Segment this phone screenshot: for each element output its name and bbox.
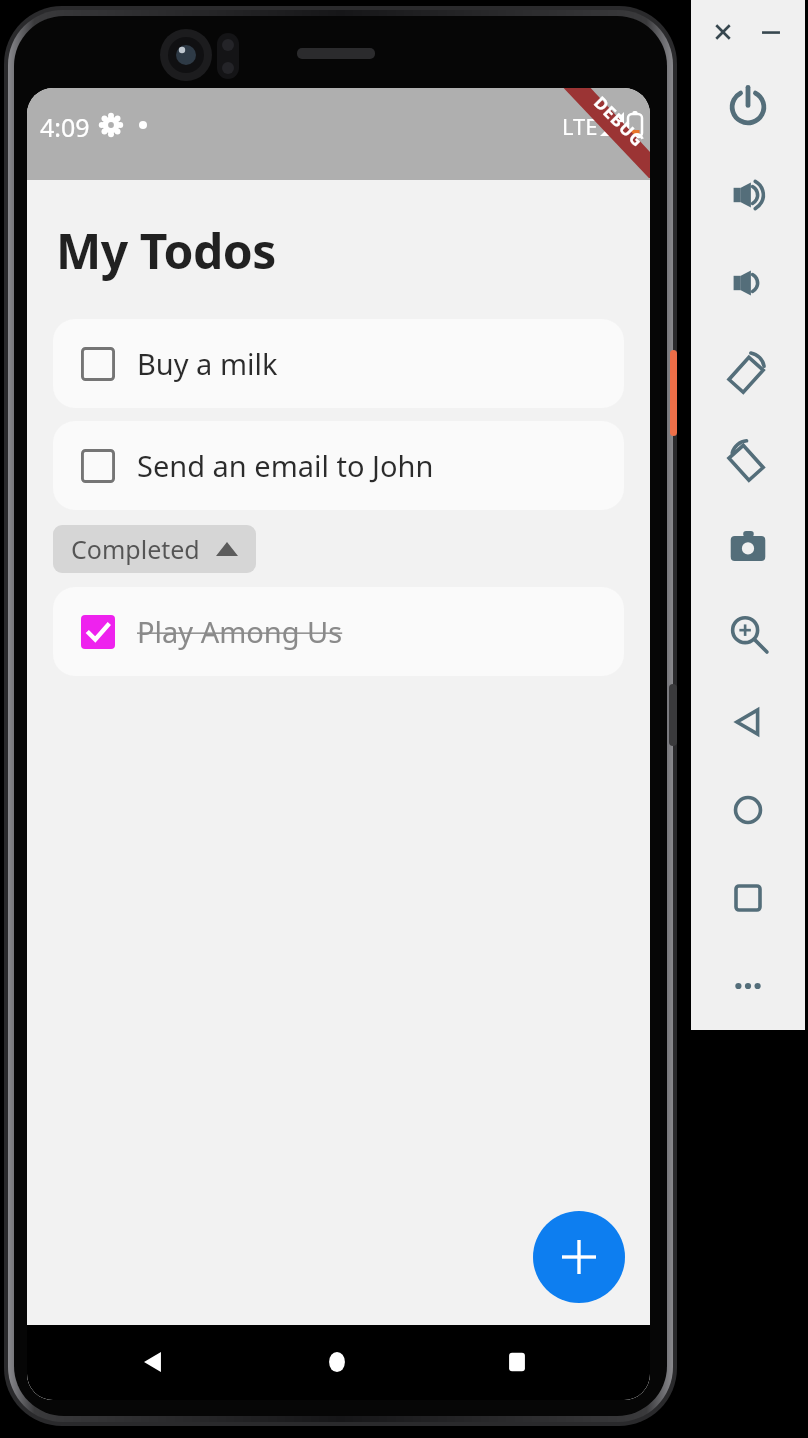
- button[interactable]: Overview: [714, 864, 782, 932]
- button[interactable]: Power: [714, 73, 782, 141]
- other: Unchecked: [81, 449, 115, 483]
- staticText: Completed: [71, 532, 200, 566]
- staticText: My Todos: [56, 218, 276, 283]
- button[interactable]: Unchecked: [53, 421, 624, 510]
- button[interactable]: Recents: [499, 1344, 535, 1380]
- staticText: Send an email to John: [137, 446, 434, 485]
- button[interactable]: Home: [319, 1344, 355, 1380]
- staticText: 4:09: [40, 110, 90, 144]
- staticText: Play Among Us: [137, 612, 343, 651]
- staticText: DEBUG: [589, 91, 650, 152]
- button[interactable]: Close: [709, 18, 737, 46]
- staticText: LTE: [562, 111, 598, 141]
- button[interactable]: Checked: [53, 587, 624, 676]
- button[interactable]: Home: [714, 776, 782, 844]
- staticText: Buy a milk: [137, 344, 278, 383]
- button[interactable]: Volume down: [714, 249, 782, 317]
- button[interactable]: Zoom: [714, 600, 782, 668]
- button[interactable]: Add todo: [533, 1211, 625, 1303]
- button[interactable]: Screenshot: [714, 512, 782, 580]
- button[interactable]: Completed: [53, 525, 256, 573]
- button[interactable]: Back: [135, 1344, 171, 1380]
- other: Unchecked: [81, 347, 115, 381]
- other: Checked: [81, 615, 115, 649]
- button[interactable]: Back: [714, 688, 782, 756]
- button[interactable]: Minimize: [757, 18, 785, 46]
- button[interactable]: Volume up: [714, 161, 782, 229]
- button[interactable]: Rotate right: [714, 425, 782, 493]
- button[interactable]: Unchecked: [53, 319, 624, 408]
- button[interactable]: Rotate left: [714, 337, 782, 405]
- button[interactable]: More: [714, 952, 782, 1020]
